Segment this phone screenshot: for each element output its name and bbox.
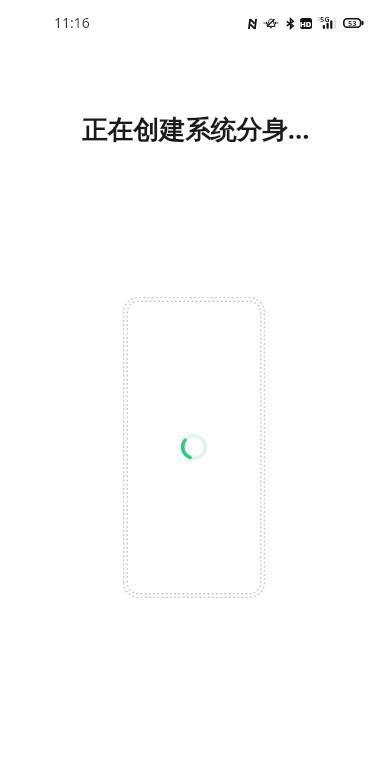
staticText: HD	[300, 19, 312, 29]
staticText: 正在创建系统分身...	[2, 111, 387, 146]
other: Ringer silent, vibrate	[263, 18, 279, 28]
other: Bluetooth on	[286, 18, 294, 29]
staticText: 11:16	[54, 13, 90, 32]
other: NFC enabled	[248, 19, 257, 29]
staticText: 5G	[320, 14, 330, 24]
other: HD voice	[300, 18, 312, 29]
other: Battery 53 percent	[343, 18, 364, 28]
other: 5G signal strength	[317, 16, 336, 30]
staticText: 53	[348, 18, 357, 28]
other: Creating clone, in progress	[181, 434, 207, 460]
